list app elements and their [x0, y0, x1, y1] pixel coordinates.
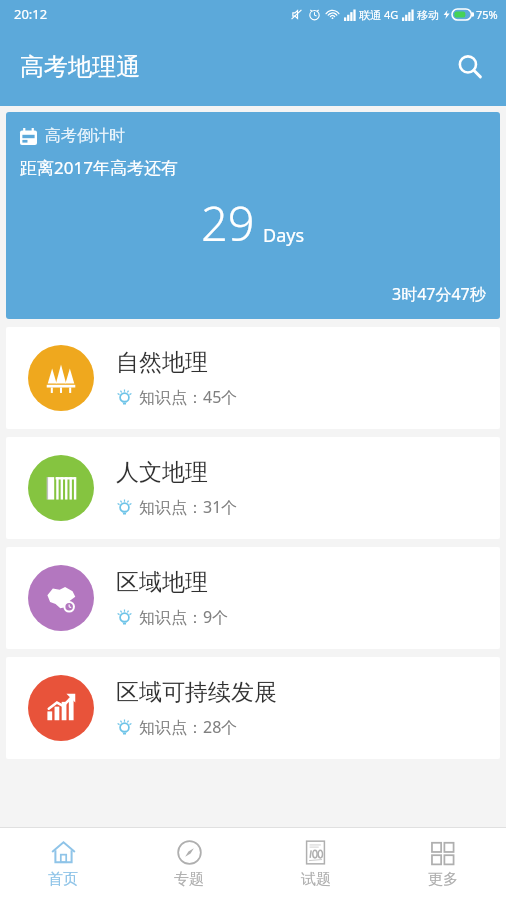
staticText: 75% [476, 7, 498, 22]
staticText: 高考倒计时 [45, 126, 125, 146]
staticText: 知识点：9个 [139, 606, 229, 628]
button[interactable]: 首页 [0, 828, 126, 900]
staticText: 距离2017年高考还有 [20, 156, 178, 179]
staticText: Days [263, 223, 305, 248]
button[interactable]: 高考倒计时 [6, 112, 500, 319]
staticText: 知识点：45个 [139, 386, 238, 408]
staticText: 自然地理 [116, 348, 208, 377]
staticText: 专题 [174, 870, 204, 889]
staticText: 3时47分47秒 [392, 283, 486, 305]
staticText: 4G [384, 7, 399, 22]
button[interactable]: 自然地理 [6, 327, 500, 429]
button[interactable]: 区域可持续发展 [6, 657, 500, 759]
staticText: 区域地理 [116, 568, 208, 597]
staticText: 29 [201, 191, 255, 255]
button[interactable]: 试题 [252, 828, 379, 900]
button[interactable]: Search [444, 41, 496, 93]
staticText: 首页 [48, 870, 78, 889]
staticText: 联通 [359, 8, 381, 22]
button[interactable]: 人文地理 [6, 437, 500, 539]
staticText: 知识点：31个 [139, 496, 238, 518]
staticText: 更多 [428, 870, 458, 889]
staticText: 移动 [417, 8, 439, 22]
staticText: 试题 [301, 870, 331, 889]
staticText: 高考地理通 [20, 52, 140, 82]
staticText: 人文地理 [116, 458, 208, 487]
staticText: 知识点：28个 [139, 716, 238, 738]
button[interactable]: 更多 [379, 828, 506, 900]
button[interactable]: 专题 [126, 828, 252, 900]
staticText: 20:12 [14, 5, 48, 23]
button[interactable]: 区域地理 [6, 547, 500, 649]
staticText: 区域可持续发展 [116, 678, 277, 707]
